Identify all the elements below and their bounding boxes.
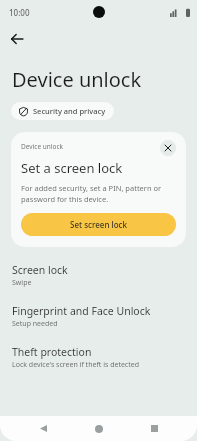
button[interactable]: Dismiss <box>160 140 176 156</box>
staticText: Fingerprint and Face Unlock <box>12 304 151 318</box>
staticText: Security and privacy <box>33 106 106 116</box>
button[interactable]: Recent apps <box>141 416 167 441</box>
staticText: Device unlock <box>21 142 160 151</box>
button[interactable]: Fingerprint and Face Unlock <box>0 304 197 329</box>
button[interactable]: Home <box>86 416 112 441</box>
staticText: 10:00 <box>9 7 30 18</box>
staticText: Swipe <box>12 278 32 288</box>
staticText: Set screen lock <box>70 219 127 230</box>
staticText: Device unlock <box>12 66 142 93</box>
staticText: Set a screen lock <box>21 159 123 177</box>
staticText: Lock device's screen if theft is detecte… <box>12 360 140 370</box>
staticText: Setup needed <box>12 319 58 329</box>
button[interactable]: Back <box>30 416 56 441</box>
button[interactable]: Security and privacy <box>11 102 114 120</box>
staticText: Theft protection <box>12 345 92 359</box>
staticText: Screen lock <box>12 263 68 277</box>
button[interactable]: Theft protection <box>0 345 197 370</box>
button[interactable]: Set screen lock <box>21 213 176 236</box>
staticText: For added security, set a PIN, pattern o… <box>21 183 176 204</box>
button[interactable]: Screen lock <box>0 263 197 288</box>
button[interactable]: Back <box>4 26 30 52</box>
